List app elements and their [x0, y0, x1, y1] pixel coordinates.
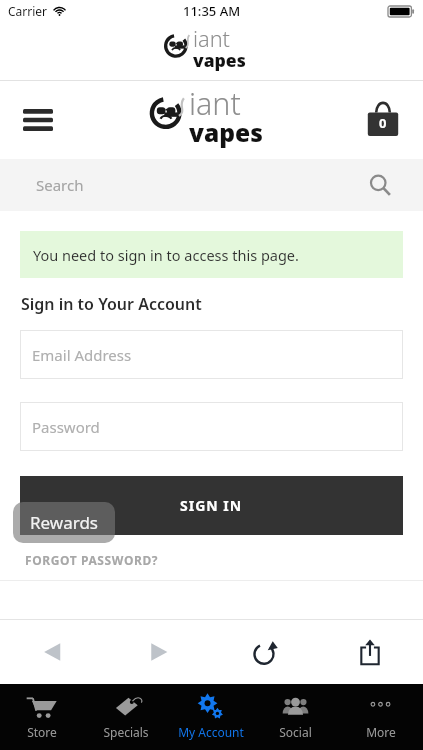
- staticText: You need to sign in to access this page.: [33, 245, 299, 265]
- button[interactable]: Cart, 0 items: [361, 98, 405, 142]
- button[interactable]: More: [338, 684, 423, 750]
- staticText: 11:35 AM: [183, 2, 241, 20]
- button[interactable]: My Account: [168, 684, 253, 750]
- staticText: Sign in to Your Account: [21, 293, 202, 315]
- button[interactable]: FORGOT PASSWORD?: [25, 552, 159, 568]
- button[interactable]: Store: [0, 684, 84, 750]
- staticText: Search: [36, 175, 84, 195]
- staticText: Carrier: [8, 3, 48, 19]
- button[interactable]: Share: [317, 620, 423, 684]
- staticText: Specials: [103, 724, 149, 740]
- button[interactable]: iant: [151, 83, 269, 157]
- staticText: vapes: [193, 48, 246, 72]
- staticText: My Account: [178, 724, 244, 740]
- staticText: iant: [189, 83, 241, 124]
- staticText: Email Address: [32, 345, 132, 365]
- button[interactable]: Password: [20, 402, 403, 451]
- staticText: SIGN IN: [180, 496, 243, 515]
- button[interactable]: Back: [0, 620, 105, 684]
- button[interactable]: SIGN IN: [20, 476, 403, 535]
- staticText: Social: [279, 724, 312, 740]
- staticText: Rewards: [30, 511, 98, 534]
- staticText: Store: [27, 724, 57, 740]
- staticText: Password: [32, 417, 100, 437]
- staticText: More: [366, 724, 396, 740]
- staticText: iant: [193, 24, 230, 54]
- button[interactable]: Specials: [84, 684, 168, 750]
- button[interactable]: Menu: [14, 96, 62, 144]
- button[interactable]: Email Address: [20, 330, 403, 379]
- button[interactable]: Search: [0, 159, 423, 211]
- button[interactable]: Rewards: [13, 502, 115, 543]
- button[interactable]: Reload: [211, 620, 317, 684]
- staticText: 0: [379, 114, 387, 132]
- button[interactable]: Social: [253, 684, 338, 750]
- button[interactable]: Forward: [105, 620, 211, 684]
- staticText: vapes: [189, 116, 263, 149]
